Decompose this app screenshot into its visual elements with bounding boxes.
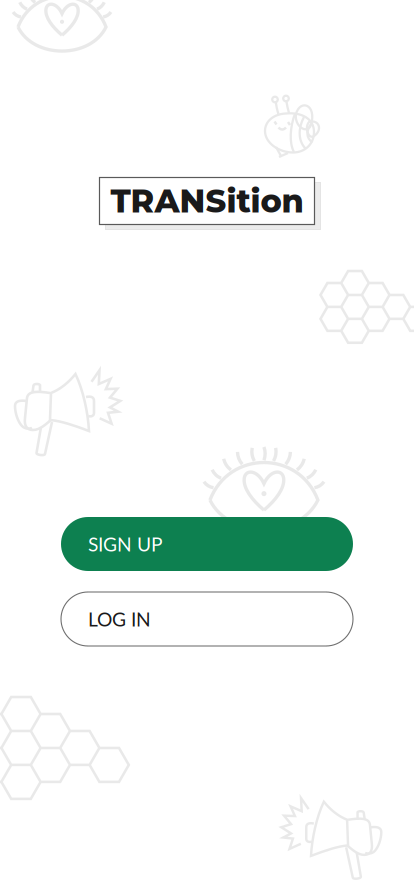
staticText: TRANSition (110, 181, 303, 220)
button[interactable]: LOG IN (61, 592, 353, 646)
staticText: SIGN UP (88, 532, 163, 555)
staticText: LOG IN (88, 607, 151, 630)
button[interactable]: SIGN UP (61, 517, 353, 571)
